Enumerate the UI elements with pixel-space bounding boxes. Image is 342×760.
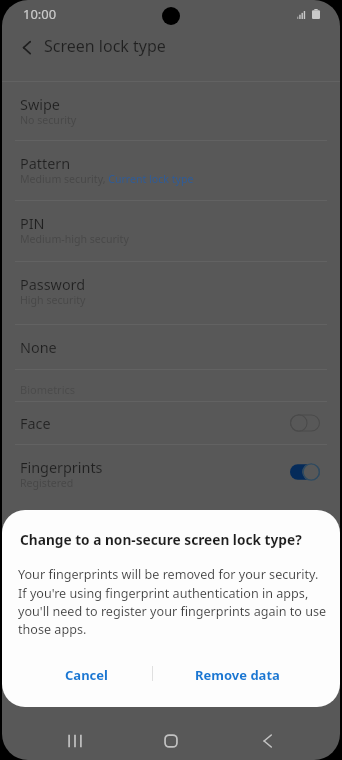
button[interactable]: Remove data [169, 653, 305, 697]
staticText: No security [20, 113, 77, 127]
staticText: Screen lock type [44, 35, 166, 57]
button[interactable]: Turn off [290, 463, 320, 481]
button[interactable]: None [2, 325, 340, 369]
staticText: Face [20, 414, 51, 434]
button[interactable]: Swipe [2, 82, 340, 140]
button[interactable]: Home [147, 718, 195, 760]
staticText: Remove data [195, 666, 280, 684]
button[interactable]: Navigate up [7, 26, 49, 68]
staticText: PIN [20, 214, 45, 234]
staticText: 10:00 [23, 5, 57, 23]
button[interactable]: PIN [2, 201, 340, 261]
staticText: Change to a non-secure screen lock type? [20, 530, 302, 549]
staticText: Biometrics [20, 382, 76, 397]
button[interactable]: Face [2, 402, 340, 444]
staticText: High security [20, 293, 86, 307]
button[interactable]: Turn on [290, 414, 320, 432]
staticText: None [20, 338, 57, 358]
staticText: Fingerprints [20, 458, 103, 478]
button[interactable]: Pattern [2, 141, 340, 200]
staticText: Pattern [20, 154, 71, 174]
button[interactable]: Back [242, 718, 290, 760]
staticText: Medium-high security [20, 232, 129, 246]
button[interactable]: Fingerprints [2, 445, 340, 504]
staticText: Medium security, Current lock type [20, 172, 194, 186]
staticText: Cancel [65, 666, 108, 684]
button[interactable]: Password [2, 262, 340, 324]
button[interactable]: Recent apps [51, 718, 99, 760]
staticText: Swipe [20, 95, 60, 115]
staticText: Your fingerprints will be removed for yo… [18, 566, 330, 637]
staticText: Registered [20, 476, 74, 490]
button[interactable]: Cancel [18, 653, 154, 697]
staticText: Password [20, 275, 86, 295]
